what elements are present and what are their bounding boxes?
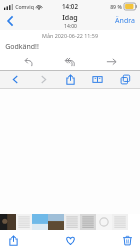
button[interactable]: Tillbaka [0,12,20,30]
staticText: 89 % [110,3,122,10]
button[interactable]: Svara [17,53,41,70]
button[interactable]: Bild 5 [64,214,80,230]
button[interactable]: Framåt [31,71,55,88]
button[interactable]: Radera [114,230,140,250]
staticText: Idag [62,13,78,23]
button[interactable]: Bild 1 [0,214,16,230]
staticText: 14:00 [64,23,77,30]
staticText: 14:02 [62,2,78,10]
button[interactable]: Bild 2 [16,214,32,230]
button[interactable]: Dela [58,71,82,88]
button[interactable]: Bakåt [3,71,27,88]
button[interactable]: Svara alla [58,53,82,70]
staticText: Comviq [15,3,34,10]
button[interactable]: Bild 3 [32,214,48,230]
button[interactable]: Bokmärken [85,71,109,88]
button[interactable]: Vidarebefordra [99,53,123,70]
button[interactable]: Bild 7 [96,214,112,230]
button[interactable]: Bild 6 [80,214,96,230]
button[interactable]: Bild 4 [48,214,64,230]
button[interactable]: Bild 8 [112,214,128,230]
button[interactable]: Ändra [110,12,140,30]
staticText: Godkänd!! [5,42,39,52]
button[interactable]: Dela [0,230,26,250]
staticText: Ändra [115,16,135,26]
button[interactable]: Flikar [113,71,137,88]
staticText: Mån 2020-06-22 11:59 [42,32,98,39]
button[interactable]: Favorit [57,230,83,250]
